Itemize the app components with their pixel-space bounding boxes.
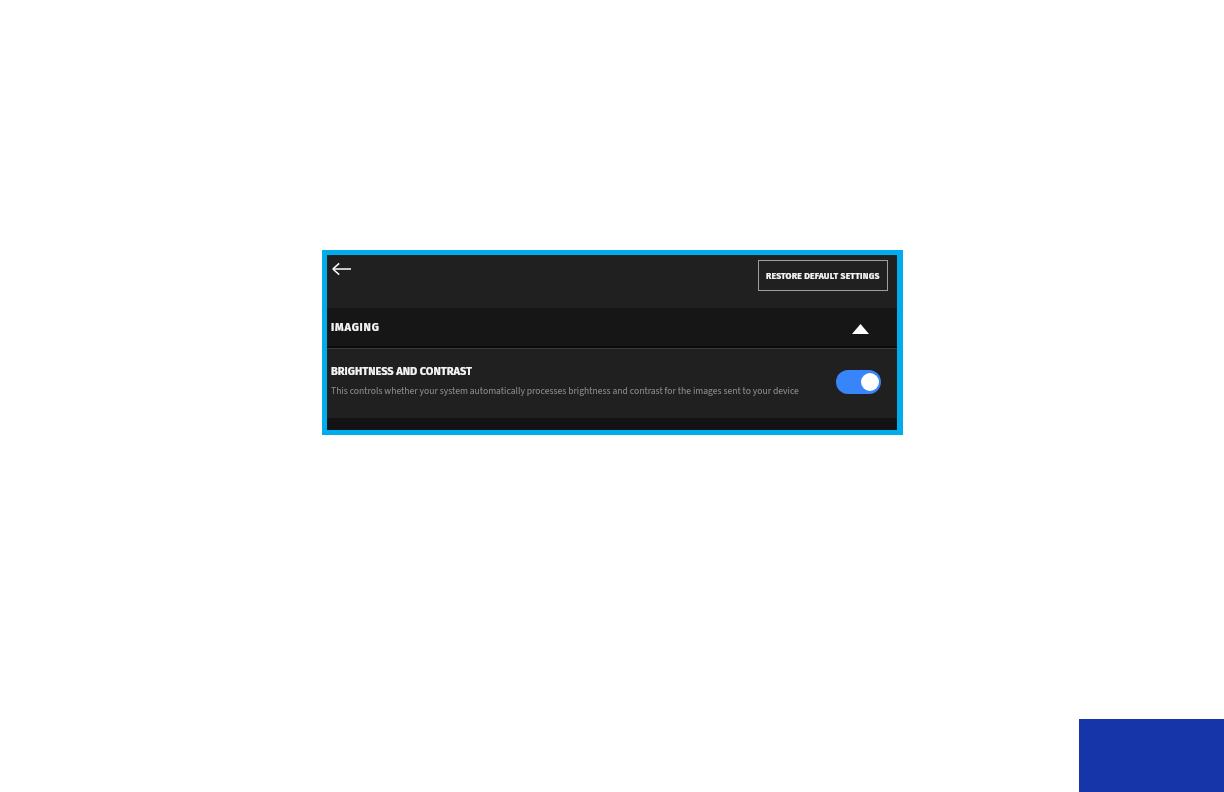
staticText: IMAGING bbox=[331, 321, 380, 334]
button[interactable]: Brightness and contrast toggle bbox=[836, 370, 881, 394]
staticText: RESTORE DEFAULT SETTINGS bbox=[766, 271, 880, 281]
staticText: BRIGHTNESS AND CONTRAST bbox=[331, 365, 472, 378]
button[interactable]: IMAGING bbox=[327, 308, 897, 346]
button[interactable]: BRIGHTNESS AND CONTRAST bbox=[327, 349, 897, 418]
button[interactable]: RESTORE DEFAULT SETTINGS bbox=[758, 260, 888, 291]
button[interactable]: Back bbox=[327, 255, 355, 283]
staticText: This controls whether your system automa… bbox=[331, 384, 799, 398]
